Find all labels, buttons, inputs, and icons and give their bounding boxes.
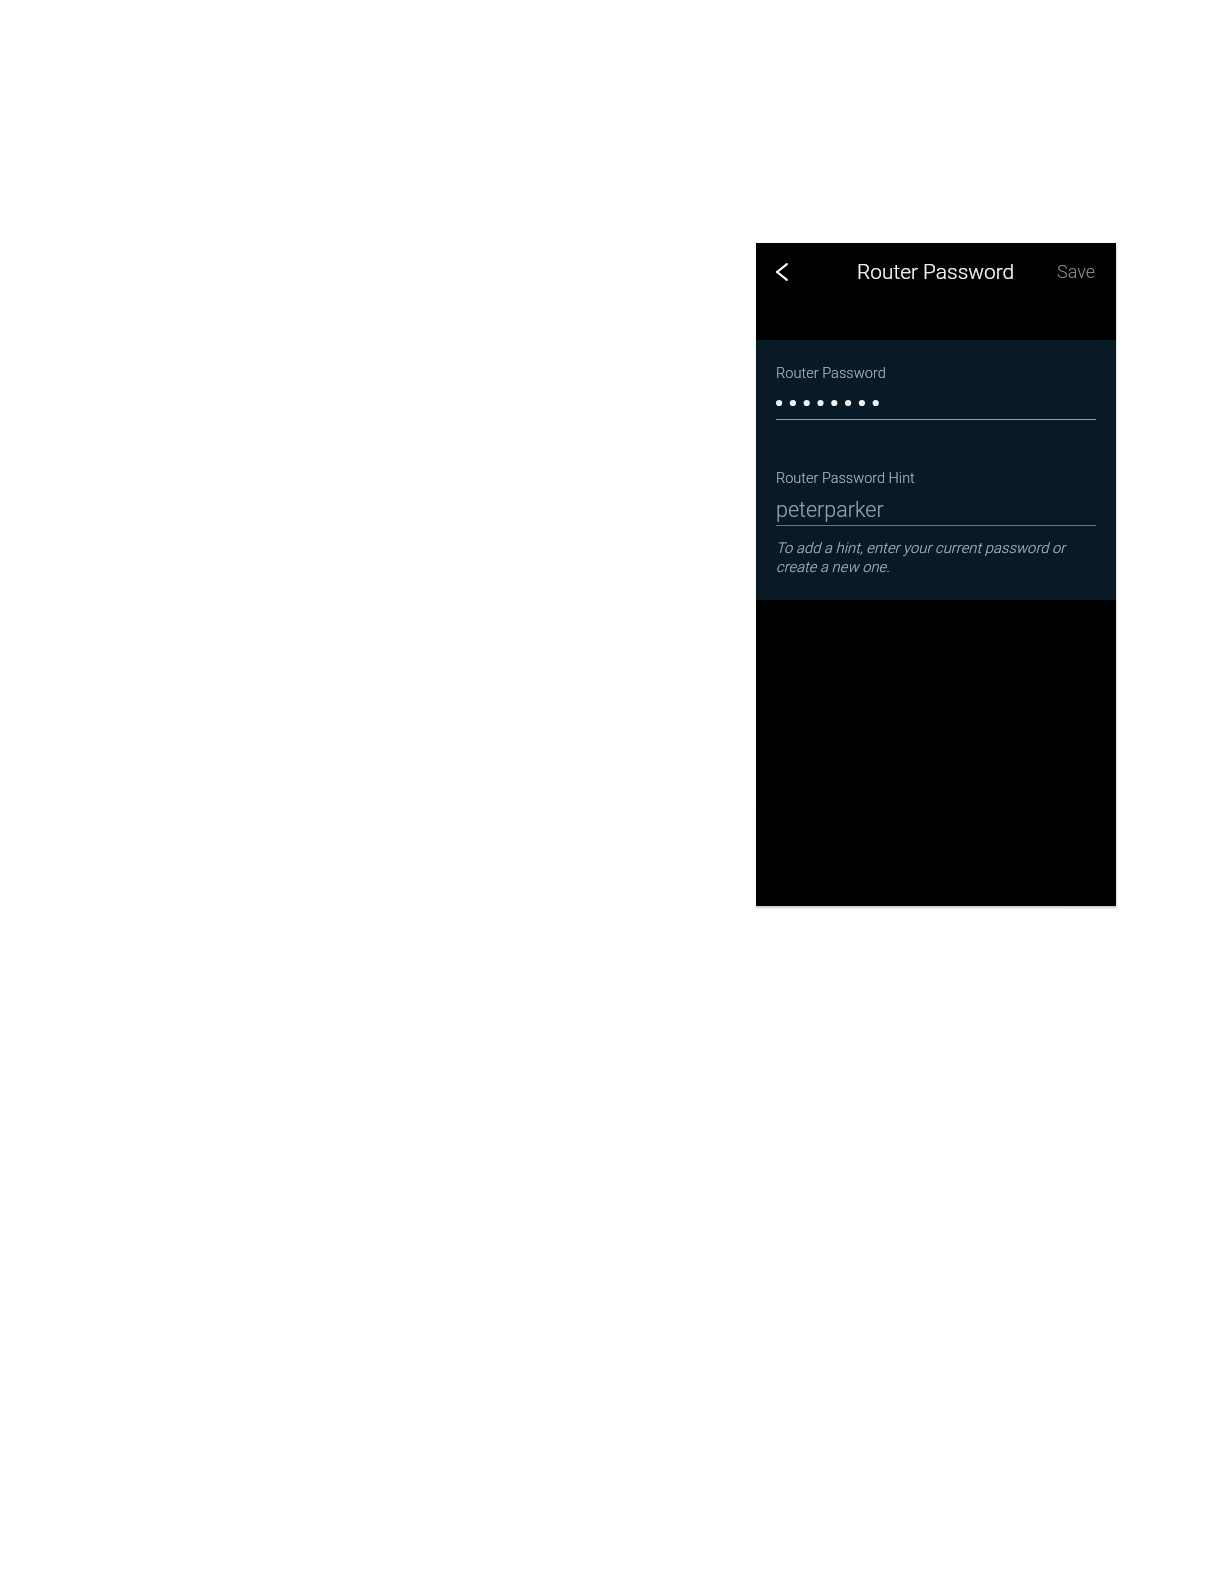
button[interactable]: Save xyxy=(1043,253,1110,290)
staticText: Router Password xyxy=(857,260,1015,284)
staticText: create a new one. xyxy=(776,558,890,575)
staticText: Save xyxy=(1057,261,1096,282)
button[interactable]: Router Password field xyxy=(776,358,1096,420)
staticText: Router Password Hint xyxy=(776,470,915,487)
staticText: peterparker xyxy=(776,497,884,522)
button[interactable]: Router Password Hint field xyxy=(776,464,1096,526)
staticText: To add a hint, enter your current passwo… xyxy=(776,539,1066,556)
staticText: Router Password xyxy=(776,364,886,381)
button[interactable]: Back xyxy=(760,250,804,294)
